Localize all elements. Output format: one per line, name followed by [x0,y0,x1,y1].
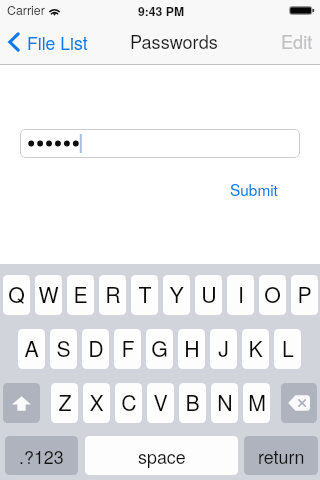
button[interactable] [20,129,300,158]
staticText: T [138,279,152,310]
staticText: K [248,333,263,364]
staticText: U [201,279,217,310]
button[interactable]: V [147,383,174,423]
staticText: 9:43 PM [138,2,185,19]
button[interactable]: J [210,329,237,369]
staticText: I [238,279,244,310]
staticText: File List [27,30,88,55]
staticText: Z [58,387,72,418]
staticText: S [56,333,71,364]
button[interactable]: R [99,275,126,315]
button[interactable]: W [35,275,62,315]
staticText: C [121,387,137,418]
button[interactable]: M [243,383,270,423]
staticText: W [38,279,59,310]
staticText: Carrier [7,1,45,19]
button[interactable]: Submit [225,174,283,204]
button[interactable]: U [195,275,222,315]
button[interactable]: G [146,329,173,369]
staticText: Edit [281,28,313,54]
staticText: B [185,387,200,418]
staticText: M [248,387,266,418]
button[interactable]: H [178,329,205,369]
button[interactable]: Backspace [281,383,317,423]
staticText: V [153,387,168,418]
button[interactable]: O [259,275,286,315]
button[interactable]: Shift [3,383,40,423]
staticText: return [258,443,305,469]
button[interactable]: Z [51,383,78,423]
button[interactable]: N [211,383,238,423]
staticText: Y [169,279,184,310]
staticText: D [88,333,104,364]
staticText: G [151,333,168,364]
staticText: space [138,443,186,469]
button[interactable]: return [244,436,318,475]
button[interactable]: B [179,383,206,423]
staticText: L [282,333,294,364]
staticText: H [184,333,200,364]
button[interactable]: X [83,383,110,423]
button[interactable]: A [18,329,45,369]
button[interactable]: .?123 [5,436,78,475]
button[interactable]: space [85,436,238,475]
button[interactable]: P [291,275,318,315]
button[interactable]: Edit [271,20,320,64]
button[interactable]: D [82,329,109,369]
staticText: F [121,333,135,364]
button[interactable]: Q [3,275,30,315]
staticText: Submit [230,178,278,200]
button[interactable]: C [115,383,142,423]
staticText: R [105,279,121,310]
button[interactable]: Y [163,275,190,315]
button[interactable]: S [50,329,77,369]
staticText: .?123 [19,443,64,469]
button[interactable]: T [131,275,158,315]
staticText: N [217,387,233,418]
button[interactable]: K [242,329,269,369]
staticText: Passwords [130,28,218,54]
staticText: Q [8,279,25,310]
staticText: J [218,333,229,364]
button[interactable]: F [114,329,141,369]
button[interactable]: I [227,275,254,315]
staticText: X [89,387,104,418]
button[interactable]: E [67,275,94,315]
button[interactable]: File List [0,20,96,64]
staticText: P [297,279,312,310]
staticText: E [73,279,88,310]
button[interactable]: L [274,329,301,369]
staticText: O [264,279,281,310]
staticText: A [24,333,39,364]
